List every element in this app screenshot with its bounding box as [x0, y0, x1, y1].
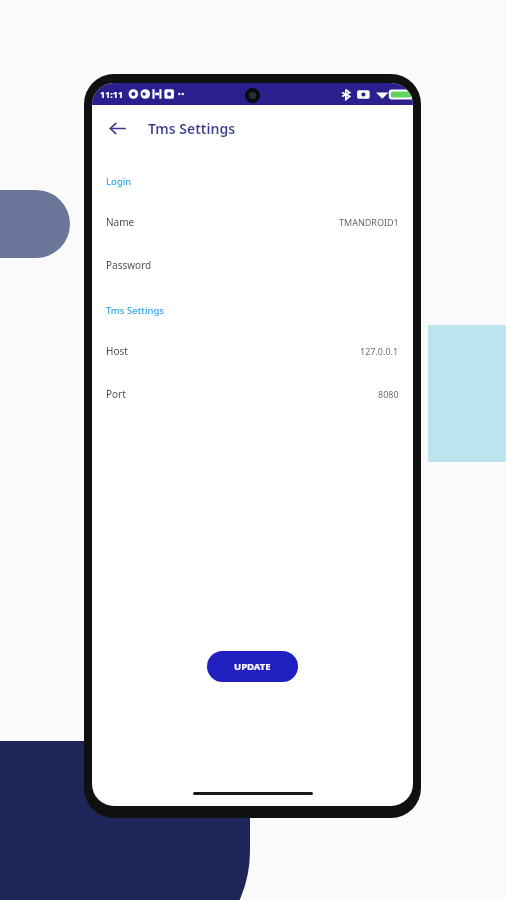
staticText: 8080: [378, 388, 399, 400]
staticText: TMANDROID1: [339, 216, 399, 228]
staticText: 11:11: [100, 88, 124, 100]
staticText: UPDATE: [234, 660, 271, 673]
button[interactable]: Port: [106, 387, 399, 401]
staticText: 127.0.0.1: [360, 345, 399, 357]
staticText: Tms Settings: [148, 119, 236, 138]
button[interactable]: Password: [106, 258, 399, 272]
button[interactable]: Login: [106, 175, 399, 188]
staticText: Login: [106, 175, 132, 188]
button[interactable]: UPDATE: [207, 651, 298, 682]
staticText: Port: [106, 387, 126, 401]
button[interactable]: Tms Settings: [106, 304, 399, 317]
staticText: Tms Settings: [106, 304, 164, 317]
button[interactable]: Name: [106, 215, 399, 229]
staticText: Host: [106, 344, 128, 358]
button[interactable]: Back: [100, 111, 134, 145]
button[interactable]: Host: [106, 344, 399, 358]
staticText: Name: [106, 215, 135, 229]
staticText: Password: [106, 258, 152, 272]
